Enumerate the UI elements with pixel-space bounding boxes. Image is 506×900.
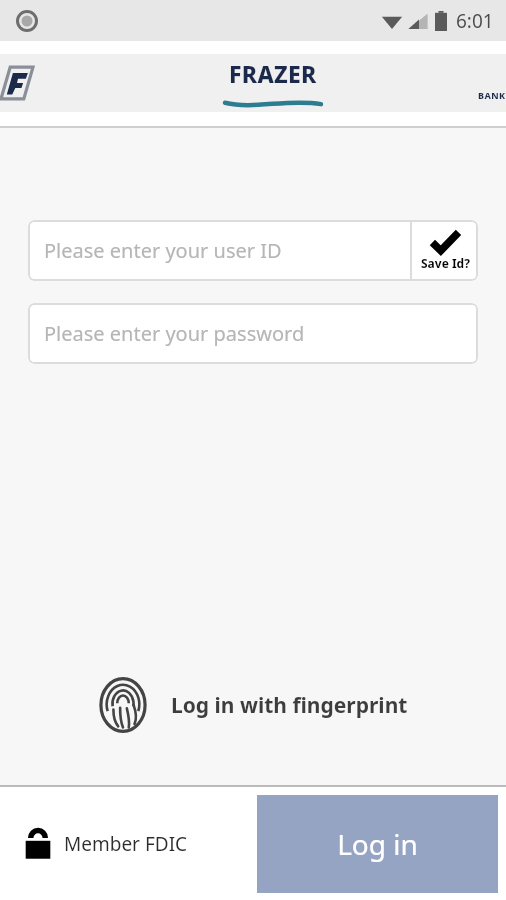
staticText: Please enter your password — [44, 320, 305, 347]
staticText: Please enter your user ID — [44, 237, 282, 264]
button[interactable]: Log in with fingerprint — [0, 671, 506, 739]
staticText: Member FDIC — [64, 831, 188, 857]
staticText: Save Id? — [421, 255, 470, 271]
button[interactable]: Log in — [257, 795, 498, 893]
staticText: Log in with fingerprint — [171, 691, 408, 720]
button[interactable]: Member FDIC — [24, 828, 188, 860]
staticText: FRAZER — [229, 58, 317, 89]
staticText: 6:01 — [456, 8, 494, 34]
button[interactable]: Please enter your password — [28, 303, 478, 364]
staticText: Log in — [337, 825, 418, 863]
staticText: BANK — [478, 89, 506, 101]
button[interactable]: Save Id — [412, 220, 478, 281]
button[interactable]: Please enter your user ID — [28, 220, 410, 281]
